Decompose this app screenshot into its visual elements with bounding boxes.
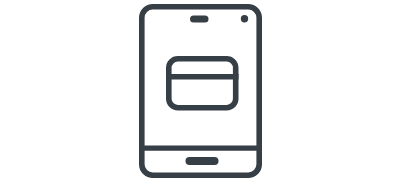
button[interactable]: Mobile payment card [0,0,400,183]
